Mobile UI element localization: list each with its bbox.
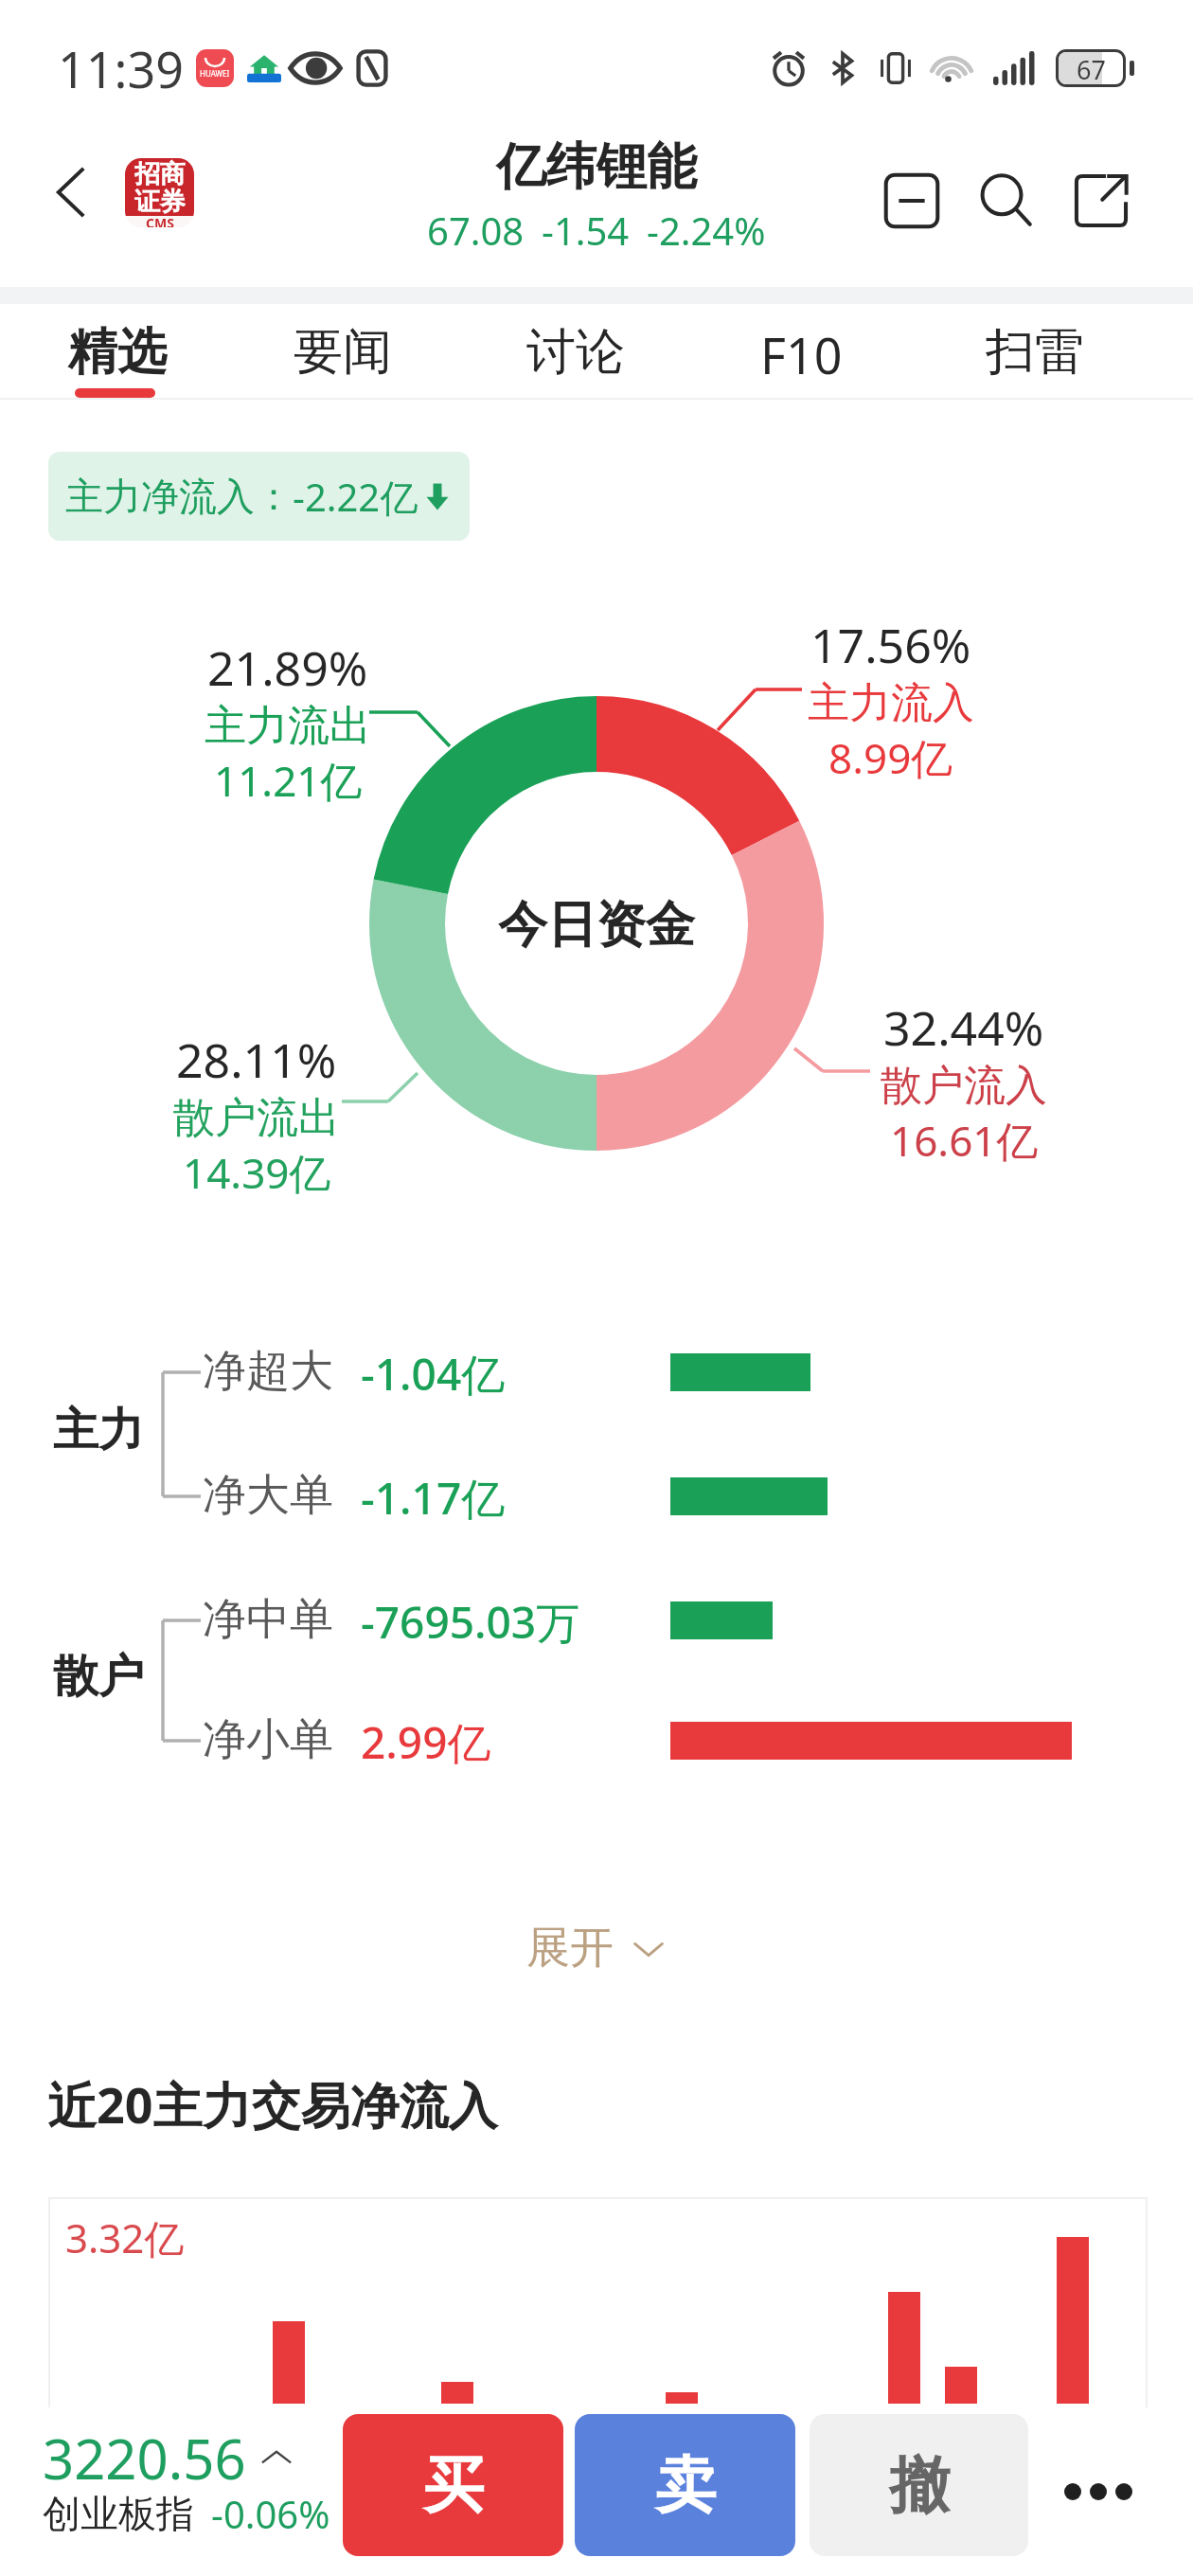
staticText: 卖 <box>655 2447 716 2524</box>
staticText: 主力 <box>53 1402 144 1458</box>
button[interactable]: More <box>1042 2407 1155 2576</box>
staticText: 67 <box>1077 52 1106 84</box>
staticText: 讨论 <box>526 321 625 384</box>
button[interactable]: Search <box>959 153 1054 248</box>
button[interactable]: 主力净流入： <box>48 452 470 541</box>
staticText: 28.11% <box>176 1028 337 1092</box>
button[interactable]: F10 <box>697 321 905 387</box>
staticText: 展开 <box>526 1921 614 1976</box>
staticText: 17.56% <box>810 613 971 677</box>
staticText: 净大单 <box>203 1468 333 1523</box>
button[interactable]: 要闻 <box>239 321 447 387</box>
staticText: 14.39亿 <box>183 1144 331 1201</box>
staticText: 撤 <box>889 2447 950 2524</box>
staticText: 2.99亿 <box>361 1712 491 1772</box>
staticText: 3.32亿 <box>65 2210 185 2264</box>
staticText: 创业板指 <box>43 2490 194 2537</box>
staticText: 3220.56 <box>43 2421 246 2495</box>
staticText: 散户流入 <box>881 1060 1047 1112</box>
staticText: CMS <box>146 214 174 227</box>
button[interactable]: 撤 <box>810 2414 1028 2556</box>
button[interactable]: Share <box>1054 153 1148 248</box>
button[interactable]: 展开 <box>498 1909 695 1987</box>
button[interactable]: 讨论 <box>472 321 680 387</box>
staticText: -2.24% <box>647 205 766 256</box>
staticText: 散户 <box>53 1648 144 1705</box>
button[interactable]: Back <box>19 140 123 244</box>
staticText: 32.44% <box>883 995 1044 1060</box>
staticText: -1.04亿 <box>361 1344 506 1404</box>
staticText: 散户流出 <box>173 1092 340 1144</box>
staticText: 8.99亿 <box>828 729 953 786</box>
staticText: 买 <box>423 2447 484 2524</box>
staticText: 亿纬锂能 <box>496 135 697 199</box>
staticText: -2.22亿 <box>293 471 418 523</box>
staticText: 今日资金 <box>498 894 695 957</box>
button[interactable]: 净中单 <box>189 1575 1136 1666</box>
button[interactable]: CMS logo <box>125 158 194 227</box>
staticText: 要闻 <box>294 321 392 384</box>
button[interactable]: 净超大 <box>189 1327 1136 1418</box>
staticText: -0.06% <box>211 2488 330 2539</box>
staticText: 11:39 <box>58 35 184 102</box>
staticText: -1.54 <box>542 205 630 256</box>
staticText: 净中单 <box>203 1592 333 1647</box>
staticText: 主力流出 <box>205 700 371 752</box>
staticText: 16.61亿 <box>890 1112 1039 1169</box>
staticText: 精选 <box>68 321 167 384</box>
button[interactable]: 净大单 <box>189 1451 1136 1542</box>
staticText: 主力净流入： <box>65 473 293 520</box>
staticText: 招商 <box>134 158 186 186</box>
staticText: -7695.03万 <box>361 1592 580 1652</box>
button[interactable]: 净小单 <box>189 1695 1136 1786</box>
staticText: F10 <box>760 321 843 387</box>
staticText: 证券 <box>134 186 186 214</box>
staticText: HUAWEI <box>200 68 230 79</box>
button[interactable]: 近20主力交易净流入 chart <box>48 2197 1148 2407</box>
staticText: 主力流入 <box>808 677 974 729</box>
staticText: 67.08 <box>427 205 525 256</box>
button[interactable]: 卖 <box>575 2414 795 2556</box>
staticText: 21.89% <box>207 635 368 700</box>
button[interactable]: Minimize <box>864 153 959 248</box>
staticText: -1.17亿 <box>361 1468 506 1528</box>
staticText: 11.21亿 <box>214 752 363 809</box>
button[interactable]: 精选 <box>13 321 222 387</box>
button[interactable]: 买 <box>343 2414 563 2556</box>
staticText: 净超大 <box>203 1344 333 1399</box>
button[interactable]: 3220.56 <box>43 2421 330 2547</box>
button[interactable]: 扫雷 <box>931 321 1139 387</box>
staticText: 扫雷 <box>986 321 1084 384</box>
staticText: 近20主力交易净流入 <box>47 2070 498 2138</box>
staticText: 净小单 <box>203 1712 333 1767</box>
